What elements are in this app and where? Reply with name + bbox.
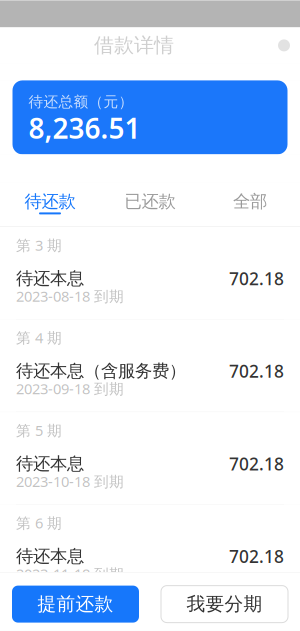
staticText: 8,236.51 bbox=[28, 109, 140, 146]
button[interactable]: 更多 bbox=[268, 27, 300, 63]
staticText: 第 4 期 bbox=[16, 328, 62, 347]
button[interactable]: 待还款 bbox=[0, 182, 100, 226]
button[interactable]: 第 7 期 bbox=[0, 597, 300, 631]
staticText: 2023-08-18 到期 bbox=[16, 286, 124, 306]
staticText: 待还款 bbox=[24, 191, 75, 212]
staticText: 第 5 期 bbox=[16, 420, 62, 440]
staticText: 待还总额（元） bbox=[28, 93, 133, 111]
staticText: 待还本息 bbox=[16, 268, 84, 289]
staticText: 702.18 bbox=[229, 452, 284, 475]
staticText: 待还本息 bbox=[16, 453, 84, 474]
button[interactable]: 第 3 期 bbox=[0, 227, 300, 319]
staticText: 提前还款 bbox=[37, 593, 113, 615]
staticText: 第 6 期 bbox=[16, 513, 62, 533]
staticText: 第 7 期 bbox=[16, 606, 62, 625]
button[interactable]: 提前还款 bbox=[12, 586, 139, 623]
button[interactable]: 我要分期 bbox=[161, 586, 288, 623]
staticText: 第 3 期 bbox=[16, 235, 62, 255]
staticText: 待还本息 bbox=[16, 546, 84, 567]
staticText: 702.18 bbox=[229, 360, 284, 383]
button[interactable]: 第 5 期 bbox=[0, 412, 300, 504]
button[interactable]: 第 6 期 bbox=[0, 505, 300, 597]
staticText: 2023-10-18 到期 bbox=[16, 471, 124, 491]
staticText: 我要分期 bbox=[186, 593, 262, 615]
button[interactable]: 第 4 期 bbox=[0, 320, 300, 412]
staticText: 全部 bbox=[233, 191, 267, 212]
button[interactable]: 已还款 bbox=[100, 182, 200, 226]
button[interactable]: 全部 bbox=[200, 182, 300, 226]
staticText: 已还款 bbox=[124, 191, 175, 212]
staticText: 借款详情 bbox=[94, 33, 174, 58]
staticText: 2023-11-18 到期 bbox=[16, 564, 124, 584]
staticText: 702.18 bbox=[229, 267, 284, 290]
staticText: 待还本息（含服务费） bbox=[16, 360, 186, 382]
staticText: 2023-09-18 到期 bbox=[16, 379, 124, 398]
staticText: 702.18 bbox=[229, 545, 284, 568]
